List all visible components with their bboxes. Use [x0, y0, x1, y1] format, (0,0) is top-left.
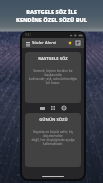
button[interactable]: Copy	[38, 104, 46, 112]
staticText: RASTGELE SÖZ İLE	[26, 8, 77, 16]
button[interactable]: More options	[74, 39, 82, 47]
button[interactable]: RASTGELE SÖZ	[25, 52, 81, 103]
button[interactable]: Menu	[24, 40, 31, 47]
staticText: GÜNÜN SÖZÜ	[39, 117, 68, 123]
button[interactable]: Categories	[49, 104, 57, 112]
staticText: KENDİNE ÖZEL SÖZÜ BUL	[16, 16, 87, 24]
button[interactable]: Share	[60, 104, 68, 112]
staticText: Hayatta en büyük zafer, hiç düşmemekte d…	[28, 130, 78, 146]
staticText: RASTGELE SÖZ	[38, 56, 68, 62]
staticText: 9:41	[25, 33, 31, 37]
button[interactable]: Favorites	[66, 39, 74, 47]
button[interactable]: GÜNÜN SÖZÜ	[25, 113, 81, 167]
staticText: Sözler Alemi	[32, 40, 57, 46]
staticText: Sevmek, kişinin kendini bir başkasında b…	[28, 69, 78, 85]
